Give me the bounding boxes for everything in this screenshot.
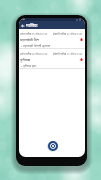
button[interactable]: Back [20,23,25,28]
staticText: शेवटची तारीख [53,52,67,55]
staticText: मासिक [26,22,38,28]
button[interactable]: Add event [48,141,58,151]
staticText: २८ ऑगस्ट २०२४ [67,52,83,55]
button[interactable]: Back [19,21,85,29]
button[interactable]: प्रारंभ तारीख [19,29,85,49]
staticText: महालक्ष्मी दिनाची सुरुवात [23,44,51,48]
staticText: प्रारंभ तारीख [20,32,32,35]
staticText: पुरीवास [20,57,31,62]
staticText: प्रारंभ तारीख [20,52,32,55]
staticText: २४ ऑगस्ट २०२४ [32,52,48,55]
staticText: 9:41 [21,18,26,21]
staticText: महालक्ष्मी दिन [20,37,39,42]
button[interactable]: प्रारंभ तारीख [19,49,85,69]
staticText: पुरीवास सुरू [23,64,37,68]
staticText: शेवटची तारीख [53,32,67,35]
button[interactable]: Remove [80,38,83,41]
button[interactable]: Remove [80,58,83,61]
staticText: २३ ऑगस्ट २०२४ [67,32,83,35]
staticText: १६ ऑगस्ट २०२४ [32,32,48,35]
